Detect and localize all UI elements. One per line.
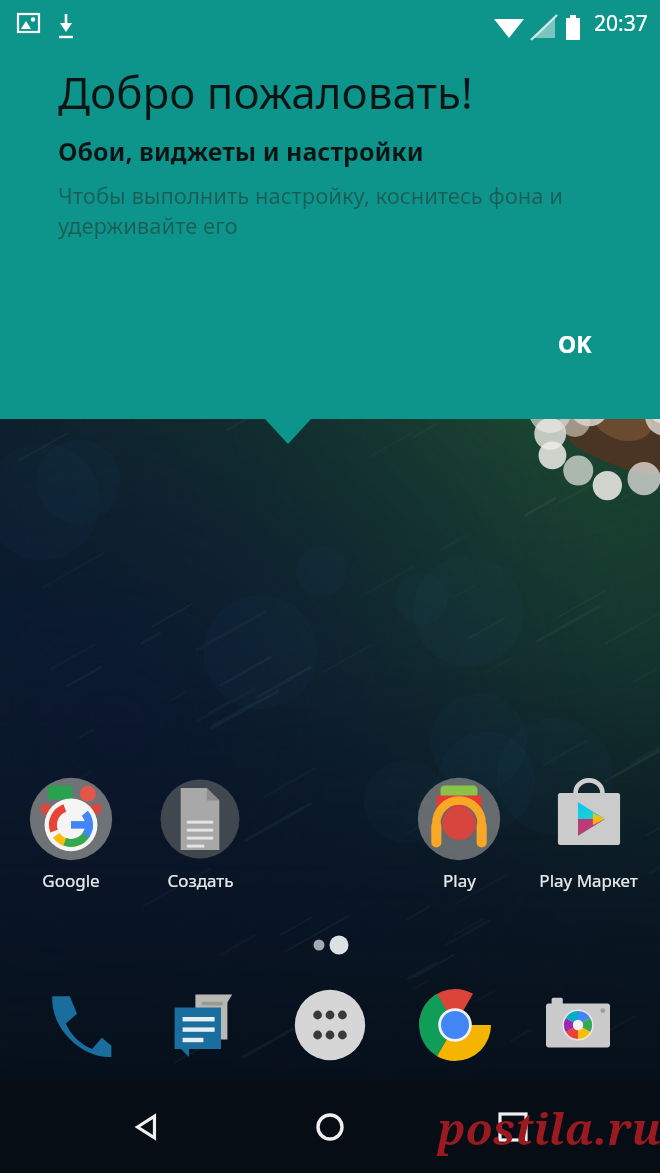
- staticText: Чтобы выполнить настройку, коснитесь фон…: [58, 180, 603, 241]
- staticText: Создать: [167, 869, 234, 892]
- staticText: Google: [42, 869, 100, 892]
- button[interactable]: Google: [9, 777, 133, 895]
- button[interactable]: Back: [117, 1097, 177, 1157]
- button[interactable]: Создать: [138, 777, 262, 895]
- button[interactable]: Home: [300, 1097, 360, 1157]
- button[interactable]: Camera: [528, 975, 628, 1075]
- staticText: postila.ru: [438, 1098, 660, 1158]
- button[interactable]: Recent apps: [483, 1097, 543, 1157]
- staticText: Обои, виджеты и настройки: [58, 134, 424, 168]
- staticText: Добро пожаловать!: [58, 62, 473, 122]
- button[interactable]: Chrome: [405, 975, 505, 1075]
- staticText: Play Маркет: [539, 869, 638, 892]
- staticText: Play: [443, 869, 476, 892]
- staticText: OK: [558, 328, 592, 359]
- button[interactable]: Play Маркет: [526, 777, 650, 895]
- button[interactable]: Phone: [31, 975, 131, 1075]
- button[interactable]: Play: [397, 777, 521, 895]
- button[interactable]: OK: [540, 316, 610, 371]
- staticText: 20:37: [594, 9, 648, 38]
- button[interactable]: Messages: [155, 975, 255, 1075]
- button[interactable]: All apps: [280, 975, 380, 1075]
